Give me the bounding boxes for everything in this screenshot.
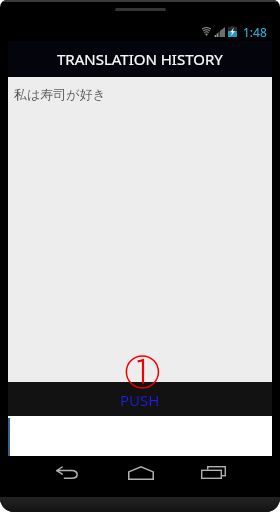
staticText: TRANSLATION HISTORY (57, 49, 223, 69)
button[interactable]: Back (45, 456, 89, 489)
staticText: 私は寿司が好き (14, 86, 106, 102)
button[interactable]: 私は寿司が好き (8, 77, 272, 105)
staticText: PUSH (120, 390, 160, 410)
button[interactable]: Recent apps (189, 461, 233, 483)
button[interactable] (8, 416, 272, 456)
button[interactable]: TRANSLATION HISTORY (8, 41, 272, 77)
button[interactable]: Home (118, 456, 163, 489)
button[interactable]: PUSH (8, 382, 272, 416)
staticText: 1:48 (243, 24, 267, 40)
